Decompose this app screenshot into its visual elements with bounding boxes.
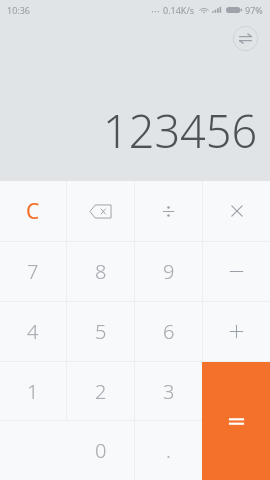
staticText: 0	[95, 437, 107, 464]
staticText: 8	[95, 258, 107, 285]
staticText: 7	[27, 258, 39, 285]
button[interactable]: 9	[135, 242, 202, 301]
staticText: 5	[95, 318, 107, 345]
button[interactable]: Multiply	[203, 181, 270, 241]
button[interactable]: 8	[67, 242, 134, 301]
button[interactable]: 5	[67, 302, 134, 361]
staticText: 9	[163, 258, 175, 285]
staticText: 10:36	[7, 4, 31, 16]
staticText: 1	[27, 378, 39, 405]
staticText: 6	[163, 318, 175, 345]
staticText: C	[26, 197, 40, 226]
staticText: .	[166, 437, 171, 464]
button[interactable]: Unit converter	[230, 23, 260, 53]
button[interactable]: 1	[0, 362, 66, 420]
button[interactable]: 3	[135, 362, 202, 420]
button[interactable]: Plus	[203, 302, 270, 361]
button[interactable]: 6	[135, 302, 202, 361]
staticText: 2	[95, 378, 107, 405]
button[interactable]: C	[0, 181, 66, 241]
staticText: 123456	[103, 100, 258, 161]
button[interactable]: Equals	[202, 362, 270, 480]
staticText: 4	[27, 318, 39, 345]
button[interactable]: 7	[0, 242, 66, 301]
staticText: 0.14K/s	[163, 4, 195, 16]
button[interactable]: 2	[67, 362, 134, 420]
button[interactable]: Minus	[203, 242, 270, 301]
button[interactable]: Backspace	[67, 181, 134, 241]
staticText: 3	[163, 378, 175, 405]
button[interactable]: Divide	[135, 181, 202, 241]
staticText: 97%	[245, 4, 263, 16]
button[interactable]: 0	[67, 421, 134, 480]
button[interactable]: 4	[0, 302, 66, 361]
